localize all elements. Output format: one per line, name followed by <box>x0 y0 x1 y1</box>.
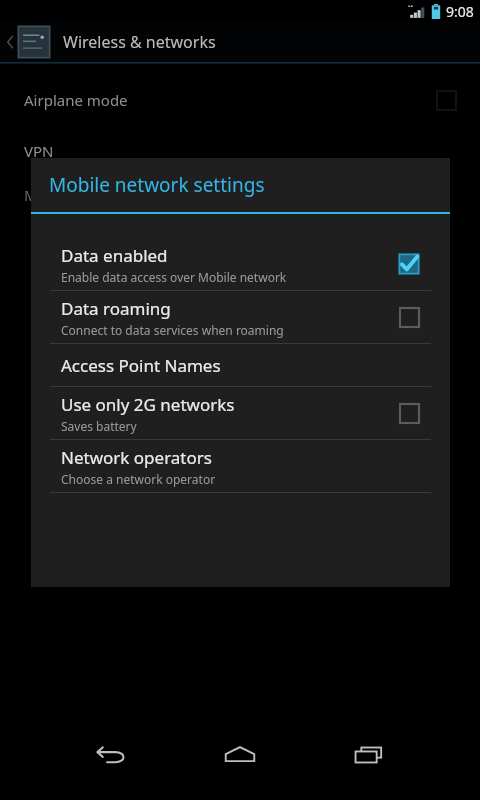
staticText: M <box>24 185 38 205</box>
staticText: Connect to data services when roaming <box>61 322 284 338</box>
staticText: Enable data access over Mobile network <box>61 269 287 285</box>
button[interactable]: Use only 2G networks <box>31 387 450 439</box>
button[interactable]: VPN <box>0 136 480 166</box>
button[interactable]: Data roaming <box>31 291 450 343</box>
staticText: Use only 2G networks <box>61 393 235 416</box>
staticText: 9:08 <box>446 2 474 21</box>
button[interactable]: Data enabled <box>31 238 450 290</box>
staticText: Wireless & networks <box>63 31 216 53</box>
button[interactable]: Network operators <box>31 440 450 492</box>
button[interactable]: Unchecked <box>396 400 422 426</box>
staticText: Data enabled <box>61 244 168 267</box>
staticText: Airplane mode <box>24 90 128 110</box>
staticText: VPN <box>24 141 54 161</box>
button[interactable]: Recent apps <box>332 727 406 783</box>
button[interactable]: Airplane mode <box>0 78 480 122</box>
staticText: Network operators <box>61 446 212 469</box>
staticText: Access Point Names <box>61 354 221 377</box>
staticText: Saves battery <box>61 418 137 434</box>
button[interactable]: Checked <box>396 251 422 277</box>
staticText: Mobile network settings <box>49 172 265 198</box>
staticText: Data roaming <box>61 297 171 320</box>
staticText: Choose a network operator <box>61 471 216 487</box>
button[interactable]: Navigate up <box>0 22 480 62</box>
other: Navigate up <box>5 33 15 51</box>
button[interactable]: Back <box>74 727 148 783</box>
button[interactable]: Unchecked <box>396 304 422 330</box>
button[interactable]: Access Point Names <box>31 344 450 386</box>
button[interactable]: Home <box>203 727 277 783</box>
